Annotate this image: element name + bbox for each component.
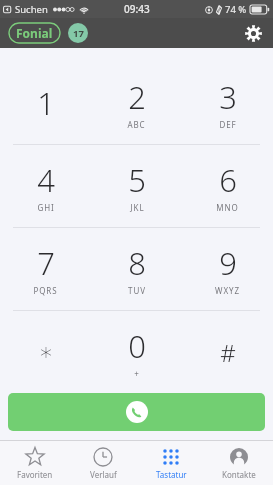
staticText: 5: [128, 159, 146, 201]
staticText: ∗: [38, 338, 54, 366]
staticText: Suchen: [15, 3, 48, 16]
button[interactable]: 9: [182, 228, 273, 310]
staticText: 17: [73, 27, 84, 40]
button[interactable]: 7: [0, 228, 91, 310]
staticText: MNO: [216, 202, 239, 213]
staticText: 8: [128, 242, 146, 284]
staticText: JKL: [130, 202, 145, 213]
staticText: Verlauf: [90, 469, 117, 480]
button[interactable]: 8: [91, 228, 182, 310]
staticText: 0: [128, 325, 146, 367]
button[interactable]: Settings: [240, 20, 266, 46]
button[interactable]: Tastatur: [137, 441, 205, 485]
staticText: DEF: [219, 119, 237, 130]
staticText: GHI: [37, 202, 55, 213]
button[interactable]: Favoriten: [0, 441, 69, 485]
button[interactable]: 0: [91, 311, 182, 393]
staticText: 2: [128, 76, 146, 118]
staticText: 3: [219, 76, 237, 118]
staticText: ABC: [127, 119, 146, 130]
staticText: 74 %: [225, 3, 247, 16]
staticText: Fonial: [16, 25, 53, 41]
button[interactable]: 17: [68, 23, 88, 43]
staticText: 09:43: [124, 2, 150, 16]
button[interactable]: 6: [182, 145, 273, 227]
staticText: 7: [37, 242, 55, 284]
staticText: Kontakte: [222, 469, 256, 480]
staticText: 6: [219, 159, 237, 201]
button[interactable]: ∗: [0, 311, 91, 393]
button[interactable]: 2: [91, 61, 182, 144]
button[interactable]: #: [182, 311, 273, 393]
staticText: PQRS: [33, 285, 58, 296]
button[interactable]: 5: [91, 145, 182, 227]
button[interactable]: 1: [0, 61, 91, 144]
staticText: TUV: [128, 285, 146, 296]
staticText: Tastatur: [156, 469, 187, 480]
button[interactable]: Call: [8, 393, 265, 431]
button[interactable]: Kontakte: [205, 441, 273, 485]
staticText: #: [220, 336, 236, 369]
staticText: +: [134, 368, 140, 379]
staticText: 1: [37, 82, 55, 124]
staticText: 4: [37, 159, 55, 201]
staticText: 9: [219, 242, 237, 284]
button[interactable]: 4: [0, 145, 91, 227]
staticText: Favoriten: [17, 469, 53, 480]
button[interactable]: 3: [182, 61, 273, 144]
button[interactable]: Verlauf: [69, 441, 137, 485]
staticText: WXYZ: [215, 285, 240, 296]
button[interactable]: Fonial: [8, 22, 61, 44]
